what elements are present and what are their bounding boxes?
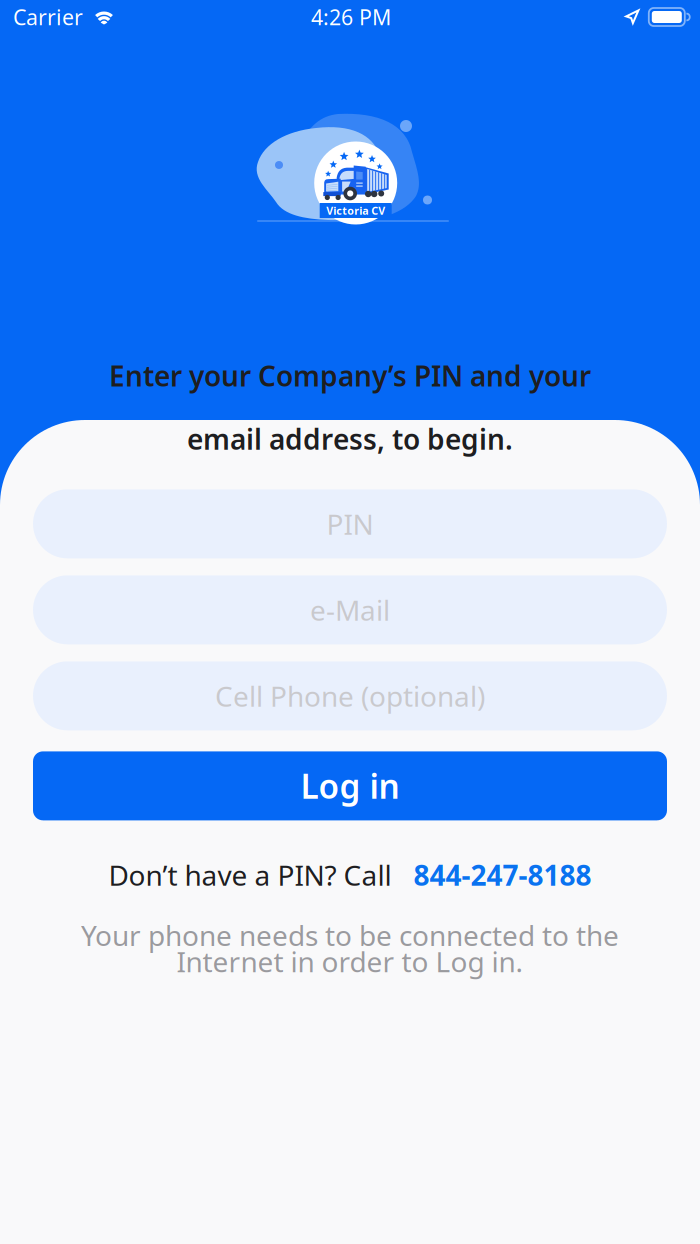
staticText: Don’t have a PIN? Call bbox=[108, 856, 391, 894]
button[interactable]: Cell Phone (optional) bbox=[33, 661, 667, 730]
staticText: Log in bbox=[300, 764, 399, 808]
staticText: e-Mail bbox=[310, 591, 390, 628]
staticText: Enter your Company’s PIN and your bbox=[109, 357, 591, 394]
staticText: Internet in order to Log in. bbox=[176, 943, 523, 980]
staticText: Your phone needs to be connected to the bbox=[81, 916, 619, 954]
staticText: Cell Phone (optional) bbox=[215, 677, 485, 714]
staticText: Carrier bbox=[13, 3, 83, 31]
staticText: 844-247-8188 bbox=[413, 856, 591, 894]
staticText: 4:26 PM bbox=[311, 3, 391, 31]
button[interactable]: PIN bbox=[33, 489, 667, 558]
button[interactable]: e-Mail bbox=[33, 575, 667, 644]
staticText: Victoria CV bbox=[326, 203, 385, 218]
button[interactable]: 844-247-8188 bbox=[413, 856, 591, 894]
staticText: PIN bbox=[326, 505, 373, 542]
staticText: email address, to begin. bbox=[187, 420, 513, 457]
button[interactable]: Log in bbox=[33, 751, 667, 820]
